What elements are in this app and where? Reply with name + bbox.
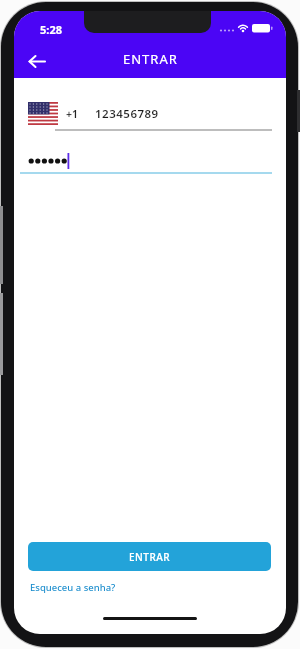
button[interactable]: [21, 47, 53, 75]
staticText: 123456789: [95, 106, 159, 122]
staticText: ENTRAR: [123, 50, 178, 68]
staticText: Esqueceu a senha?: [30, 581, 116, 594]
button[interactable]: [20, 151, 272, 172]
staticText: ENTRAR: [129, 550, 171, 564]
staticText: +1: [66, 107, 79, 121]
button[interactable]: +1: [62, 99, 272, 129]
staticText: 5:28: [40, 22, 62, 37]
button[interactable]: ENTRAR: [28, 542, 271, 571]
button[interactable]: Esqueceu a senha?: [30, 581, 116, 594]
